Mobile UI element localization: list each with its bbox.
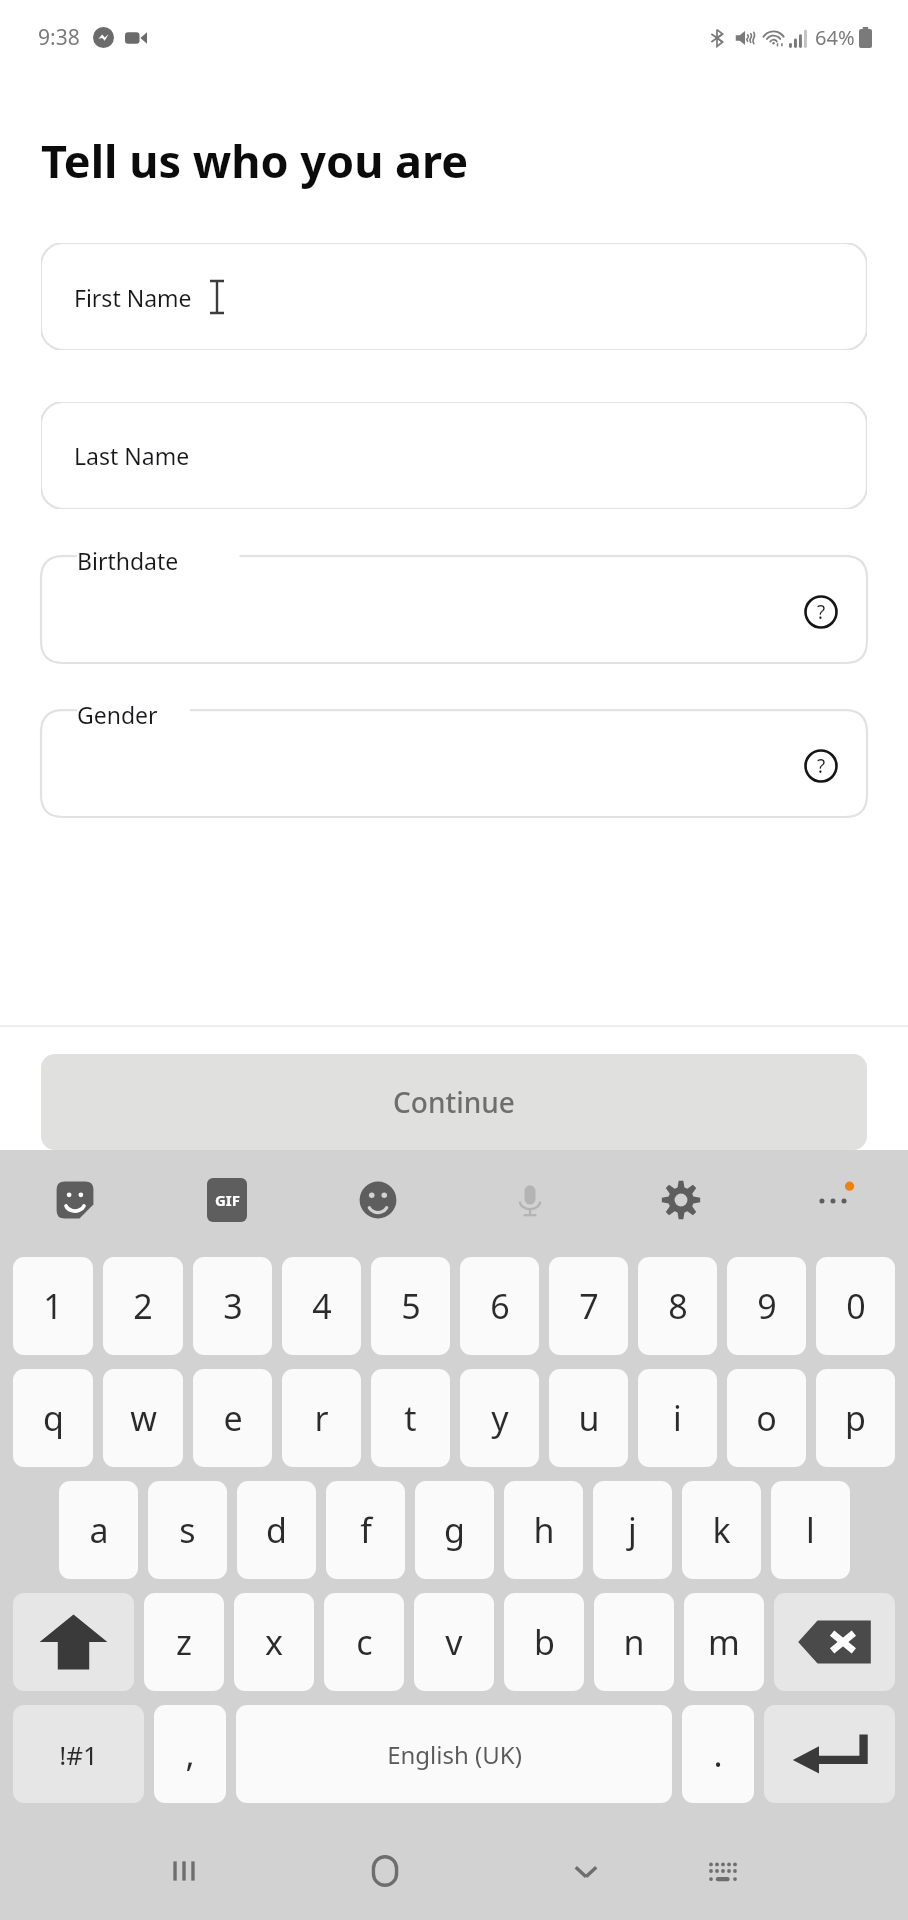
staticText: d [266, 1507, 287, 1553]
button[interactable]: q [13, 1369, 93, 1467]
staticText: b [534, 1619, 555, 1665]
button[interactable]: n [594, 1593, 674, 1691]
staticText: p [845, 1395, 866, 1441]
button[interactable]: 8 [638, 1257, 717, 1355]
staticText: 64% [815, 24, 855, 51]
staticText: f [360, 1507, 372, 1553]
button[interactable]: Backspace [774, 1593, 895, 1691]
button[interactable]: Continue [41, 1054, 867, 1150]
button[interactable]: h [504, 1481, 583, 1579]
staticText: Gender [77, 699, 158, 730]
staticText: 8 [668, 1283, 688, 1329]
button[interactable]: 9 [727, 1257, 806, 1355]
button[interactable]: a [59, 1481, 138, 1579]
staticText: i [673, 1395, 682, 1441]
button[interactable]: s [148, 1481, 227, 1579]
staticText: g [444, 1507, 465, 1553]
button[interactable]: r [282, 1369, 361, 1467]
staticText: l [806, 1507, 815, 1553]
button[interactable]: Emoji [347, 1169, 409, 1231]
button[interactable]: o [727, 1369, 806, 1467]
button[interactable]: w [103, 1369, 183, 1467]
staticText: 6 [490, 1283, 510, 1329]
staticText: 3 [223, 1283, 243, 1329]
button[interactable]: 3 [193, 1257, 272, 1355]
button[interactable]: z [144, 1593, 224, 1691]
button[interactable]: t [371, 1369, 450, 1467]
button[interactable]: j [593, 1481, 672, 1579]
staticText: y [491, 1395, 509, 1441]
staticText: w [130, 1395, 157, 1441]
button[interactable]: Voice input [499, 1169, 561, 1231]
staticText: 9 [757, 1283, 777, 1329]
button[interactable]: v [414, 1593, 494, 1691]
staticText: 4 [312, 1283, 332, 1329]
staticText: . [713, 1731, 723, 1777]
staticText: 9:38 [38, 23, 80, 52]
staticText: k [712, 1507, 731, 1553]
staticText: Tell us who you are [41, 130, 469, 191]
button[interactable]: x [234, 1593, 314, 1691]
staticText: English (UK) [387, 1738, 522, 1771]
button[interactable]: e [193, 1369, 272, 1467]
staticText: v [445, 1619, 463, 1665]
staticText: h [533, 1507, 555, 1553]
button[interactable]: Stickers [44, 1169, 106, 1231]
button[interactable]: . [682, 1705, 754, 1803]
button[interactable]: 5 [371, 1257, 450, 1355]
staticText: Last Name [74, 440, 190, 471]
staticText: First Name [74, 282, 192, 313]
button[interactable]: g [415, 1481, 494, 1579]
staticText: 0 [846, 1283, 866, 1329]
button[interactable]: 0 [816, 1257, 895, 1355]
button[interactable]: k [682, 1481, 761, 1579]
button[interactable]: Gender [41, 699, 867, 817]
button[interactable]: i [638, 1369, 717, 1467]
staticText: q [43, 1395, 64, 1441]
staticText: 5 [401, 1283, 421, 1329]
button[interactable]: Enter [764, 1705, 895, 1803]
staticText: t [404, 1395, 417, 1441]
button[interactable]: GIF [196, 1169, 258, 1231]
button[interactable]: Shift [13, 1593, 134, 1691]
button[interactable]: d [237, 1481, 316, 1579]
button[interactable]: 6 [460, 1257, 539, 1355]
button[interactable]: Home [355, 1841, 415, 1901]
button[interactable]: First Name [41, 243, 867, 350]
button[interactable]: English (UK) [236, 1705, 672, 1803]
button[interactable]: f [326, 1481, 405, 1579]
button[interactable]: p [816, 1369, 895, 1467]
staticText: , [185, 1731, 195, 1777]
button[interactable]: c [324, 1593, 404, 1691]
button[interactable]: y [460, 1369, 539, 1467]
staticText: m [708, 1619, 740, 1665]
button[interactable]: l [771, 1481, 850, 1579]
staticText: 1 [43, 1283, 63, 1329]
button[interactable]: !#1 [13, 1705, 144, 1803]
staticText: u [578, 1395, 600, 1441]
button[interactable]: Settings [650, 1169, 712, 1231]
button[interactable]: Change keyboard [693, 1841, 753, 1901]
button[interactable]: Recents [154, 1841, 214, 1901]
button[interactable]: u [549, 1369, 628, 1467]
staticText: Birthdate [77, 545, 179, 576]
button[interactable]: , [154, 1705, 226, 1803]
button[interactable]: Last Name [41, 402, 867, 509]
staticText: !#1 [59, 1737, 98, 1772]
button[interactable]: Birthdate [41, 545, 867, 663]
staticText: x [265, 1619, 283, 1665]
button[interactable]: Help [799, 590, 843, 634]
button[interactable]: 4 [282, 1257, 361, 1355]
staticText: 2 [133, 1283, 153, 1329]
staticText: r [314, 1395, 329, 1441]
button[interactable]: Help [799, 744, 843, 788]
staticText: o [756, 1395, 777, 1441]
button[interactable]: More options [802, 1169, 864, 1231]
staticText: ? [817, 599, 826, 625]
button[interactable]: m [684, 1593, 764, 1691]
button[interactable]: 2 [103, 1257, 183, 1355]
button[interactable]: 1 [13, 1257, 93, 1355]
button[interactable]: 7 [549, 1257, 628, 1355]
button[interactable]: Hide keyboard [556, 1841, 616, 1901]
button[interactable]: b [504, 1593, 584, 1691]
